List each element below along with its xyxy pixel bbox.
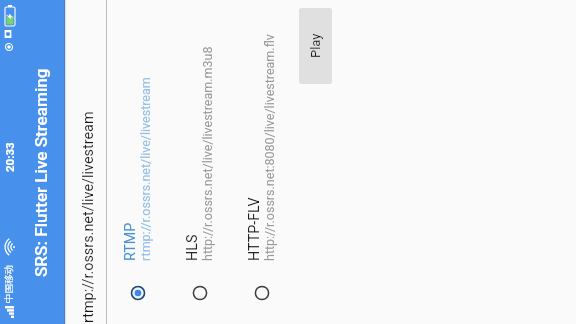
button[interactable]: HTTP-FLV — [230, 0, 290, 324]
staticText: 中国移动 — [3, 265, 15, 303]
staticText: Play — [308, 33, 323, 58]
button[interactable]: rtmp://r.ossrs.net/live/livestream — [74, 0, 107, 324]
staticText: SRS: Flutter Live Streaming — [31, 68, 51, 277]
staticText: http://r.ossrs.net:8080/live/livestream.… — [262, 34, 277, 261]
button[interactable]: RTMP — [106, 0, 166, 324]
button[interactable]: HLS — [168, 0, 228, 324]
staticText: RTMP — [122, 222, 139, 261]
staticText: HLS — [184, 234, 201, 261]
staticText: 20:33 — [3, 142, 16, 172]
button[interactable]: Play — [299, 8, 332, 84]
staticText: HTTP-FLV — [246, 197, 263, 261]
staticText: rtmp://r.ossrs.net/live/livestream — [138, 77, 153, 261]
staticText: rtmp://r.ossrs.net/live/livestream — [80, 111, 97, 323]
staticText: http://r.ossrs.net/live/livestream.m3u8 — [200, 46, 215, 261]
